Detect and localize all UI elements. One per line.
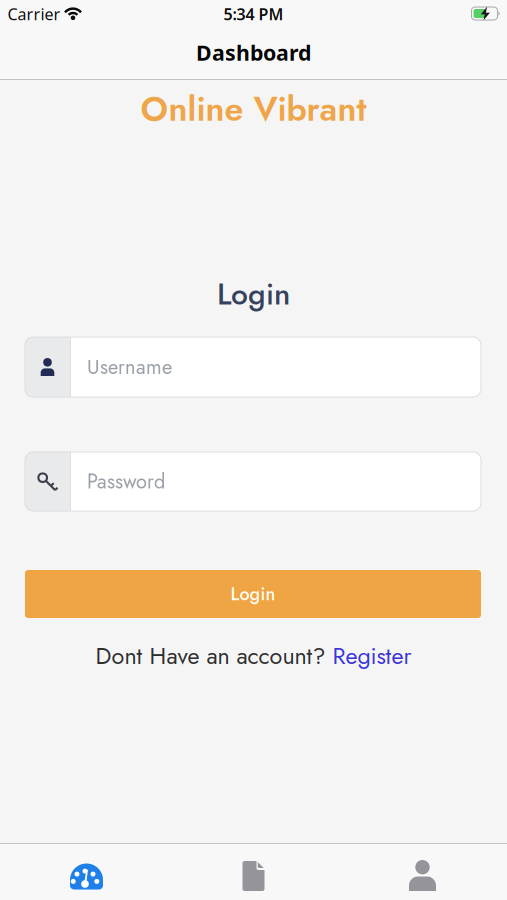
staticText: Password [87,467,165,496]
staticText: Carrier [7,3,60,25]
staticText: Login [230,581,275,607]
staticText: Register [332,639,411,673]
staticText: Online Vibrant [140,84,366,133]
button[interactable]: Dashboard [0,844,169,900]
button[interactable]: Register [332,639,411,673]
staticText: Dont Have an account? [95,639,325,673]
button[interactable]: Username [25,337,481,397]
staticText: Dashboard [196,38,311,67]
button[interactable]: Documents [169,844,338,900]
staticText: 5:34 PM [223,3,283,25]
button[interactable]: Password [25,452,481,511]
button[interactable]: Login [25,570,481,618]
staticText: Username [87,352,172,381]
button[interactable]: Profile [338,844,507,900]
staticText: Login [217,272,290,316]
